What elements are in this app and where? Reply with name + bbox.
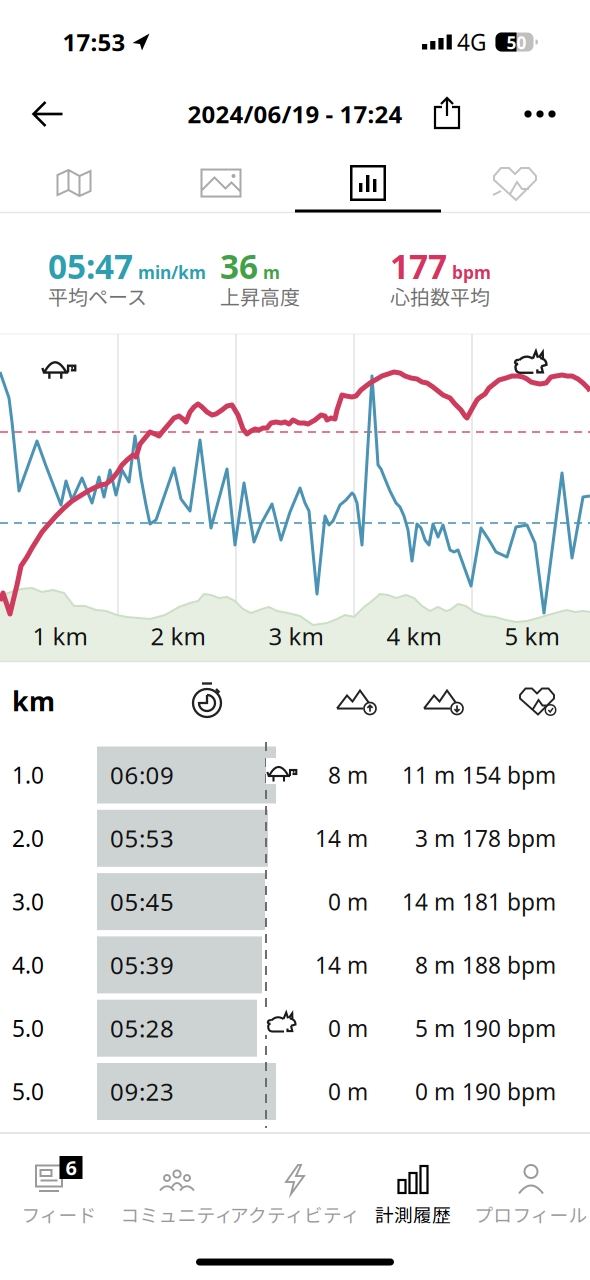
staticText: 0 m [328,1076,368,1106]
staticText: 計測履歴 [375,1200,451,1227]
staticText: 6 [65,1154,76,1181]
staticText: 14 m [315,823,368,853]
button[interactable]: Map [0,155,147,211]
staticText: 0 m [415,1076,455,1106]
staticText: 2.0 [12,823,44,853]
button[interactable]: 計測履歴 [354,1156,472,1232]
button[interactable]: プロフィール [472,1156,590,1232]
staticText: 190 bpm [462,1013,556,1043]
button[interactable]: コミュニティ [118,1156,236,1232]
staticText: 05:39 [110,949,174,981]
button[interactable]: アクティビティ [236,1156,354,1232]
staticText: 平均ペース [48,281,147,310]
staticText: 05:28 [110,1012,174,1044]
staticText: 8 m [415,950,455,980]
button[interactable]: フィード [0,1156,118,1232]
staticText: 4.0 [12,950,44,980]
staticText: 14 m [315,950,368,980]
staticText: 06:09 [110,759,174,791]
staticText: min/km [138,261,206,284]
button[interactable]: Share [427,93,467,133]
button[interactable]: Charts [294,155,441,211]
staticText: 05:53 [110,822,174,854]
staticText: アクティビティ [230,1200,360,1227]
staticText: 154 bpm [462,760,556,790]
staticText: 5 km [504,620,559,652]
staticText: 177 [390,244,447,288]
staticText: 4 km [386,620,441,652]
staticText: 178 bpm [462,823,556,853]
staticText: 上昇高度 [220,281,300,310]
staticText: 4G [457,27,487,57]
staticText: 17:53 [62,26,125,58]
staticText: km [12,683,55,719]
staticText: 5 m [415,1013,455,1043]
staticText: コミュニティ [120,1200,233,1227]
staticText: bpm [452,261,491,284]
staticText: 3.0 [12,886,44,917]
staticText: 05:45 [110,886,174,918]
staticText: 2024/06/19 - 17:24 [187,98,402,130]
staticText: 0 m [328,886,368,917]
staticText: 188 bpm [462,950,556,980]
staticText: 09:23 [110,1076,174,1107]
staticText: プロフィール [474,1200,587,1227]
button[interactable]: More [520,94,560,134]
staticText: 11 m [402,760,455,790]
staticText: 1.0 [12,760,44,790]
staticText: 05:47 [48,244,133,288]
staticText: 36 [220,244,258,288]
staticText: 心拍数平均 [390,281,490,310]
staticText: 1 km [32,620,87,652]
staticText: 2 km [150,620,205,652]
staticText: 14 m [402,886,455,917]
staticText: 190 bpm [462,1076,556,1106]
staticText: フィード [21,1200,96,1227]
button[interactable]: Photos [147,155,294,211]
staticText: 3 km [268,620,323,652]
staticText: 3 m [415,823,455,853]
staticText: 181 bpm [462,886,556,917]
staticText: 5.0 [12,1076,44,1106]
staticText: 8 m [328,760,368,790]
button[interactable]: Back [26,92,70,136]
button[interactable]: Heart rate [441,155,588,211]
staticText: m [263,261,280,284]
staticText: 5.0 [12,1013,44,1043]
staticText: 0 m [328,1013,368,1043]
staticText: 50 [506,31,526,54]
